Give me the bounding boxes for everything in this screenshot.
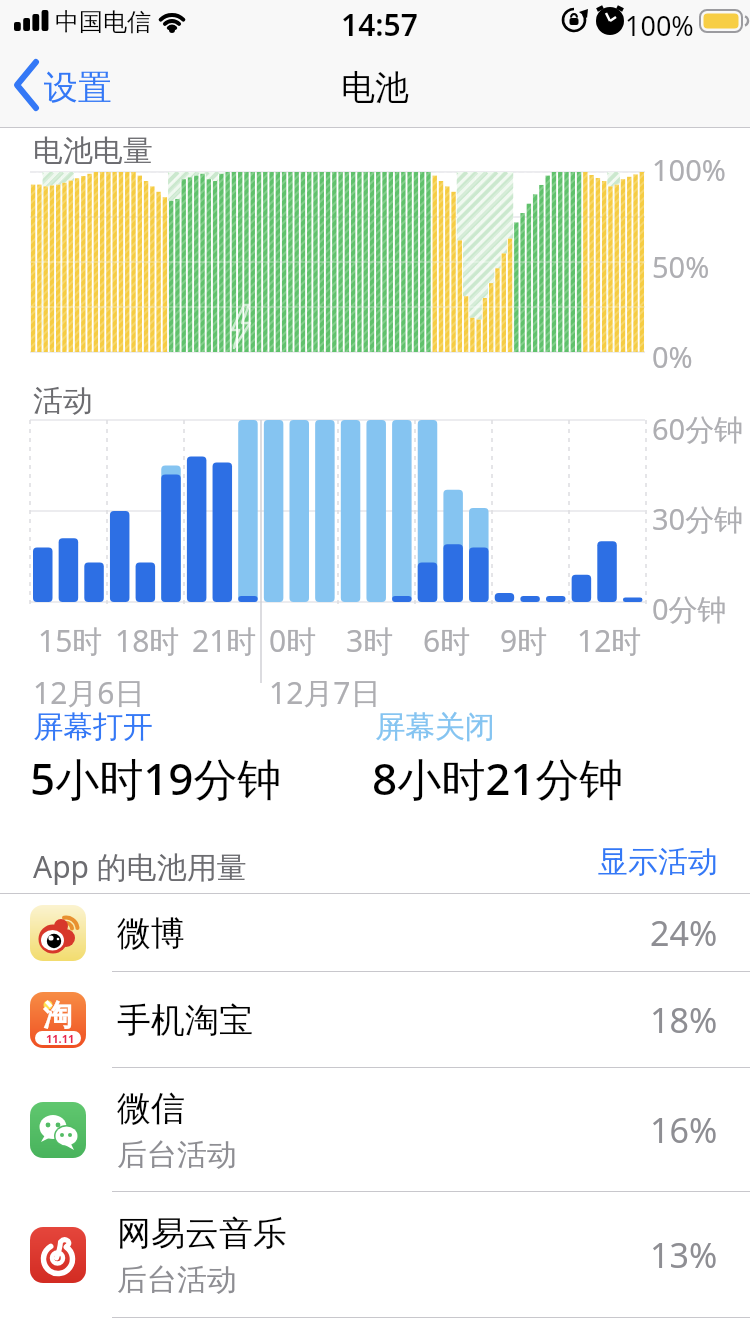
staticText: 中国电信 (55, 7, 151, 37)
staticText: 30分钟 (652, 499, 744, 539)
staticText: 100% (625, 7, 694, 44)
button[interactable]: 设置 (10, 56, 150, 116)
staticText: App 的电池用量 (33, 846, 247, 887)
staticText: 14:57 (341, 4, 418, 45)
staticText: 5小时19分钟 (30, 748, 282, 808)
staticText: 11.11 (46, 1031, 75, 1046)
staticText: 屏幕关闭 (375, 708, 495, 746)
button[interactable]: 微信 (0, 1068, 750, 1192)
button[interactable]: 显示活动 (400, 840, 718, 884)
button[interactable]: 网易云音乐 (0, 1192, 750, 1318)
staticText: 网易云音乐 (117, 1212, 287, 1255)
staticText: 微信 (117, 1087, 185, 1130)
staticText: 3时 (346, 620, 394, 661)
staticText: 6时 (423, 620, 471, 661)
staticText: 显示活动 (598, 843, 718, 881)
staticText: 后台活动 (117, 1261, 237, 1299)
staticText: 屏幕打开 (33, 708, 153, 746)
staticText: 微博 (117, 912, 185, 955)
staticText: 0% (652, 337, 693, 376)
staticText: 16% (650, 1107, 718, 1153)
staticText: 12月6日 (33, 672, 145, 713)
staticText: 24% (650, 910, 718, 956)
staticText: 12时 (577, 620, 642, 661)
staticText: 0时 (269, 620, 317, 661)
staticText: 活动 (33, 382, 93, 420)
staticText: 9时 (500, 620, 548, 661)
staticText: 手机淘宝 (117, 999, 253, 1042)
staticText: 18% (650, 997, 718, 1043)
staticText: 100% (652, 150, 726, 189)
staticText: 18时 (115, 620, 180, 661)
staticText: 后台活动 (117, 1136, 237, 1174)
staticText: 设置 (44, 66, 112, 109)
button[interactable]: 淘 (0, 972, 750, 1068)
staticText: 电池 (341, 66, 409, 109)
staticText: 60分钟 (652, 409, 744, 449)
staticText: 15时 (38, 620, 103, 661)
staticText: 0分钟 (652, 589, 727, 629)
staticText: 淘 (43, 997, 72, 1034)
staticText: 8小时21分钟 (372, 748, 624, 808)
staticText: 13% (650, 1232, 718, 1278)
staticText: 电池电量 (33, 132, 153, 170)
button[interactable]: 微博 (0, 894, 750, 972)
staticText: 50% (652, 247, 710, 286)
staticText: 21时 (192, 620, 257, 661)
staticText: 12月7日 (269, 672, 381, 713)
